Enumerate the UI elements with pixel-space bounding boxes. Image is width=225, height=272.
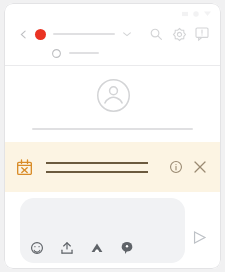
button[interactable]: Insert emoji (20, 198, 185, 263)
button[interactable]: Insert sticker (118, 239, 135, 256)
button[interactable]: Back (18, 29, 29, 40)
button[interactable]: More information (167, 158, 185, 176)
button[interactable]: Expand (121, 28, 133, 40)
button[interactable]: Attach file (58, 239, 75, 256)
button[interactable]: Account (96, 78, 130, 112)
button[interactable]: Send (185, 223, 213, 251)
button[interactable]: Dismiss (191, 158, 209, 176)
button[interactable]: Search (147, 25, 165, 43)
button[interactable]: Settings (170, 25, 188, 43)
button[interactable]: Insert emoji (28, 239, 45, 256)
button[interactable]: Insert from Drive (88, 239, 105, 256)
button[interactable]: Send feedback (193, 25, 211, 43)
